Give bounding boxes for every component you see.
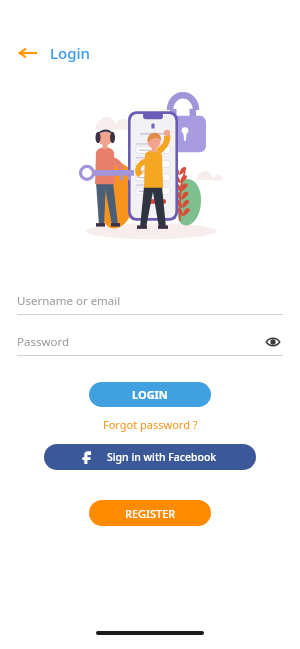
button[interactable]: LOGIN [89, 382, 211, 407]
button[interactable]: Forgot password ? [95, 415, 206, 434]
staticText: REGISTER [125, 506, 176, 521]
staticText: Forgot password ? [103, 417, 198, 432]
staticText: Login [50, 43, 90, 63]
button[interactable]: REGISTER [89, 500, 211, 526]
button[interactable]: Password [17, 329, 283, 355]
button[interactable]: Back [12, 38, 44, 68]
button[interactable]: Show password [263, 332, 283, 352]
staticText: LOGIN [132, 387, 168, 402]
staticText: Sign in with Facebook [107, 450, 217, 464]
staticText: Username or email [17, 293, 121, 309]
staticText: Password [17, 334, 263, 350]
button[interactable]: Sign in with Facebook [44, 444, 256, 470]
button[interactable]: Username or email [17, 288, 283, 314]
